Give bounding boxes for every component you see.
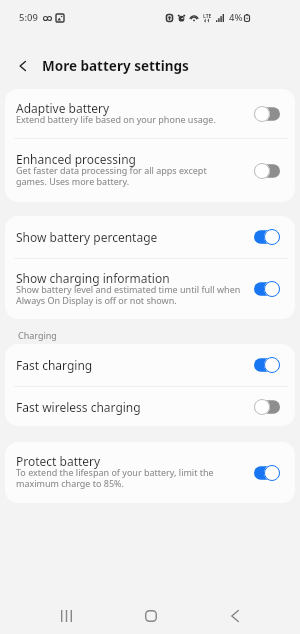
button[interactable]: On: [254, 281, 280, 297]
staticText: Charging: [18, 329, 57, 341]
button[interactable]: Show battery percentage: [5, 216, 295, 258]
button[interactable]: On: [254, 357, 280, 373]
staticText: Fast charging: [16, 357, 93, 373]
staticText: Show charging information: [16, 270, 170, 286]
button[interactable]: Off: [254, 106, 280, 122]
staticText: More battery settings: [42, 57, 189, 75]
button[interactable]: On: [254, 465, 280, 481]
staticText: LTE: [203, 13, 212, 20]
button[interactable]: Fast wireless charging: [5, 387, 295, 426]
staticText: Extend battery life based on your phone …: [16, 113, 216, 125]
staticText: Adaptive battery: [16, 100, 110, 116]
staticText: 5:09: [19, 11, 38, 24]
button[interactable]: Off: [254, 163, 280, 179]
button[interactable]: Fast charging: [5, 344, 295, 386]
button[interactable]: Navigate up: [12, 55, 34, 77]
button[interactable]: Adaptive battery: [5, 89, 295, 138]
staticText: Enhanced processing: [16, 151, 136, 167]
staticText: Fast wireless charging: [16, 399, 141, 415]
button[interactable]: Enhanced processing: [5, 139, 295, 202]
button[interactable]: Back: [213, 592, 257, 634]
staticText: To extend the lifespan of your battery, …: [16, 466, 214, 489]
button[interactable]: Protect battery: [5, 442, 295, 503]
button[interactable]: Show charging information: [5, 259, 295, 319]
staticText: Get faster data processing for all apps …: [16, 164, 207, 187]
button[interactable]: Off: [254, 399, 280, 415]
button[interactable]: Recent apps: [44, 592, 88, 634]
button[interactable]: On: [254, 229, 280, 245]
staticText: Protect battery: [16, 453, 101, 469]
staticText: Show battery level and estimated time un…: [16, 283, 241, 306]
staticText: 4%: [229, 11, 243, 24]
button[interactable]: Home: [129, 592, 173, 634]
staticText: Show battery percentage: [16, 229, 158, 245]
